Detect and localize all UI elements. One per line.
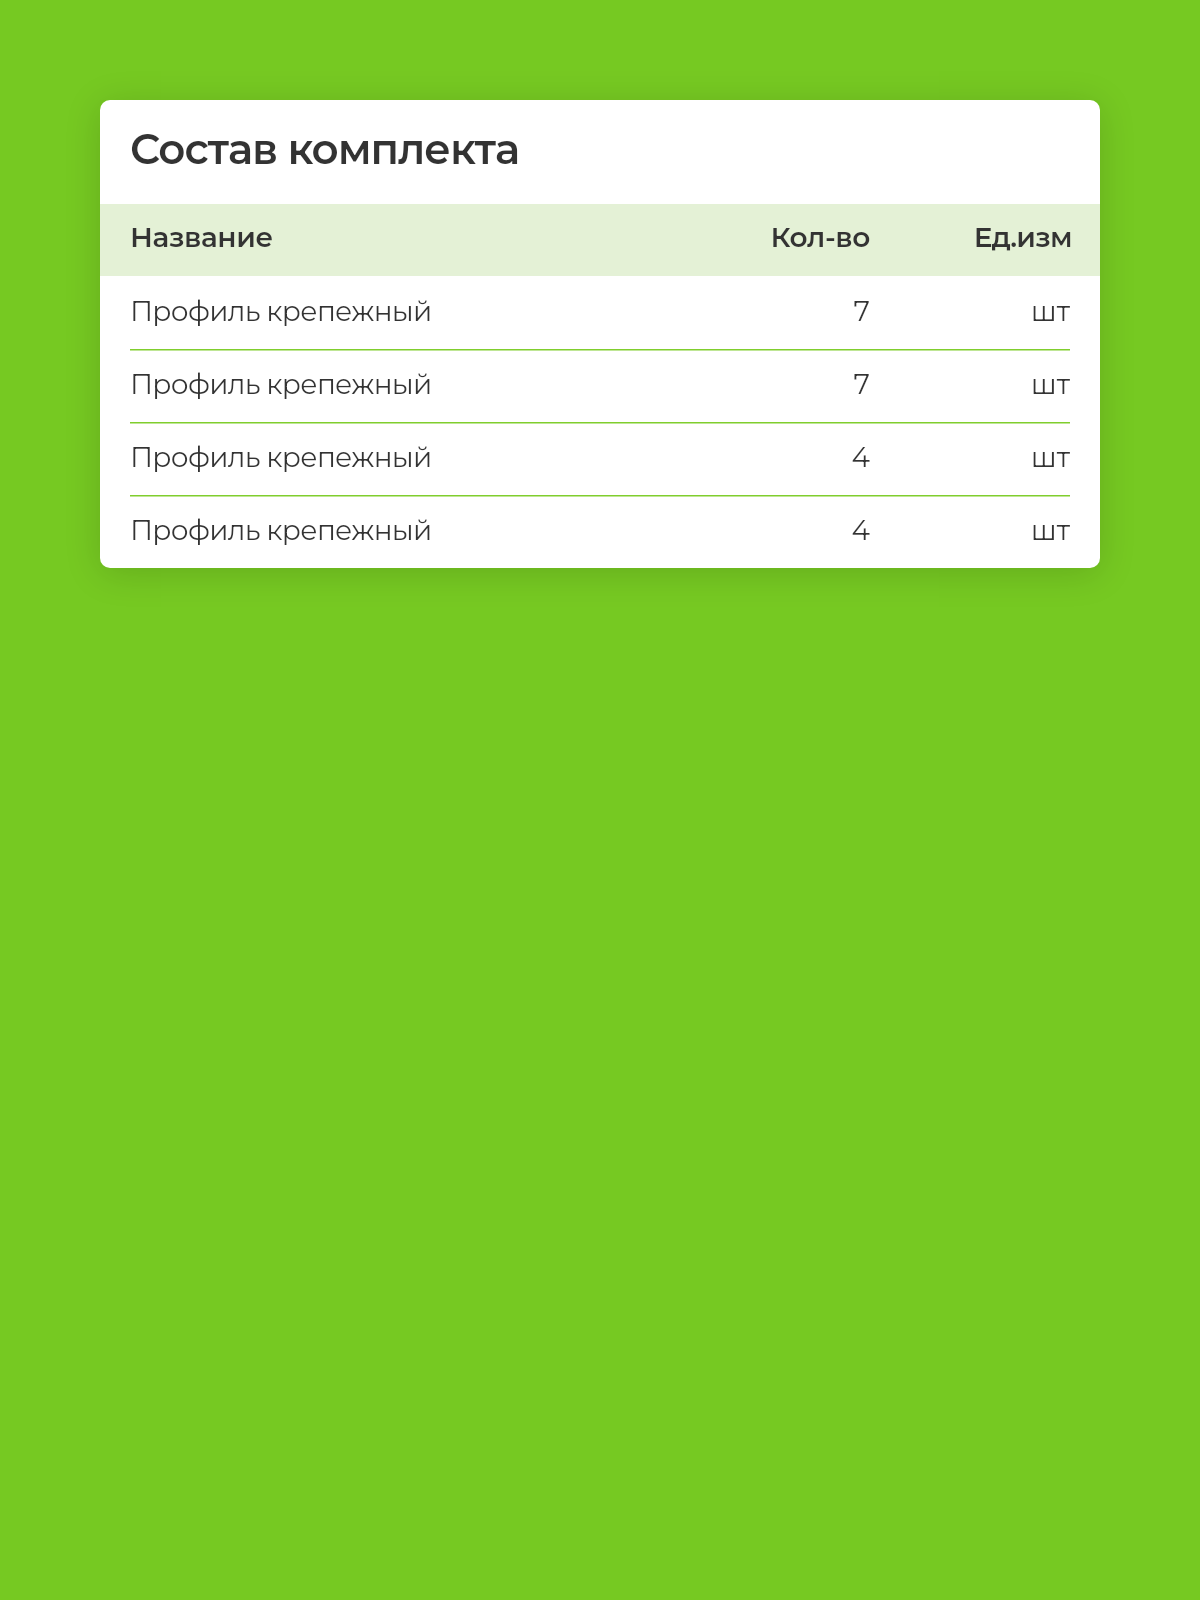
staticText: Профиль крепежный: [130, 513, 432, 547]
button[interactable]: Профиль крепежный: [100, 349, 1100, 422]
staticText: Название: [130, 220, 273, 254]
staticText: 7: [672, 367, 870, 401]
staticText: 7: [672, 294, 870, 328]
button[interactable]: Профиль крепежный: [100, 276, 1100, 349]
staticText: Ед.изм: [872, 220, 1072, 254]
staticText: 4: [672, 440, 870, 474]
staticText: шт: [870, 513, 1070, 547]
staticText: Профиль крепежный: [130, 294, 432, 328]
staticText: Профиль крепежный: [130, 440, 432, 474]
staticText: Состав комплекта: [130, 123, 519, 174]
staticText: шт: [870, 294, 1070, 328]
staticText: шт: [870, 367, 1070, 401]
staticText: 4: [672, 513, 870, 547]
staticText: шт: [870, 440, 1070, 474]
staticText: Кол-во: [672, 220, 870, 254]
button[interactable]: Профиль крепежный: [100, 422, 1100, 495]
button[interactable]: Профиль крепежный: [100, 495, 1100, 568]
staticText: Профиль крепежный: [130, 367, 432, 401]
